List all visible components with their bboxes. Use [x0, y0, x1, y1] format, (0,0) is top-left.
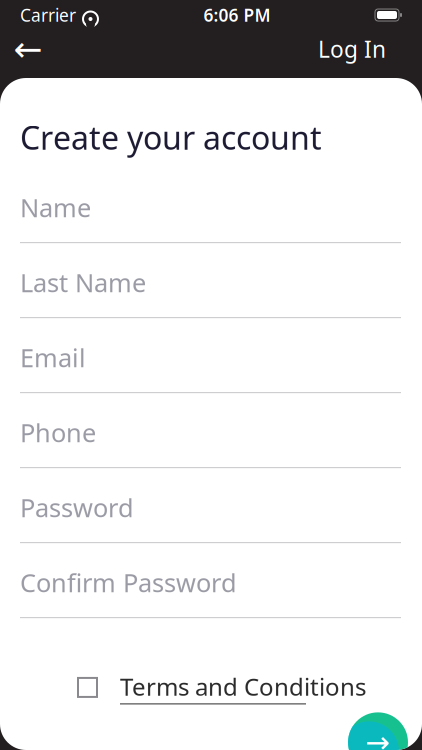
button[interactable]: Log In [306, 24, 398, 74]
staticText: Log In [318, 34, 386, 64]
staticText: Last Name [20, 265, 146, 299]
staticText: Password [20, 490, 134, 524]
button[interactable]: Accept Terms and Conditions [78, 678, 97, 697]
staticText: ← [13, 29, 42, 69]
staticText: 6:06 PM [203, 3, 270, 26]
staticText: Create your account [20, 116, 322, 158]
staticText: Carrier [20, 3, 76, 26]
staticText: Name [20, 190, 91, 224]
button[interactable]: Back [6, 27, 50, 71]
staticText: Email [20, 340, 86, 374]
button[interactable]: Terms and Conditions [120, 670, 366, 704]
staticText: Terms and Conditions [120, 670, 366, 702]
staticText: → [365, 726, 390, 750]
staticText: Phone [20, 415, 96, 449]
button[interactable]: Continue [348, 712, 408, 750]
staticText: Confirm Password [20, 565, 237, 599]
